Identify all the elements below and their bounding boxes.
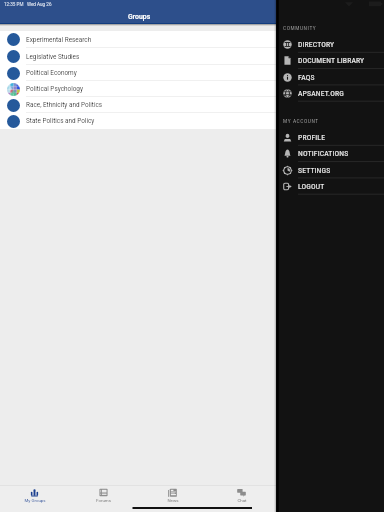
staticText: Political Economy	[26, 69, 77, 77]
staticText: SETTINGS	[298, 166, 331, 175]
staticText: 12:35 PM Wed Aug 26	[4, 2, 52, 7]
staticText: Groups	[128, 13, 151, 21]
staticText: Experimental Research	[26, 36, 92, 44]
staticText: Chat	[237, 498, 247, 503]
button[interactable]: SETTINGS	[276, 162, 384, 178]
staticText: PROFILE	[298, 133, 326, 142]
button[interactable]: Race, Ethnicity and Politics	[0, 97, 276, 113]
button[interactable]: My Groups	[0, 486, 69, 512]
staticText: LOGOUT	[298, 182, 325, 191]
button[interactable]: Experimental Research	[0, 31, 276, 48]
button[interactable]: Political Economy	[0, 65, 276, 81]
button[interactable]: State Politics and Policy	[0, 113, 276, 129]
staticText: DOCUMENT LIBRARY	[298, 56, 365, 65]
button[interactable]: NOTIFICATIONS	[276, 145, 384, 161]
staticText: Race, Ethnicity and Politics	[26, 101, 103, 109]
staticText: My Groups	[24, 498, 46, 503]
staticText: APSANET.ORG	[298, 89, 344, 98]
button[interactable]: DIRECTORY	[276, 36, 384, 52]
button[interactable]: Political Psychology	[0, 81, 276, 97]
button[interactable]: PROFILE	[276, 129, 384, 145]
staticText: Political Psychology	[26, 85, 83, 93]
button[interactable]: Legislative Studies	[0, 48, 276, 65]
staticText: FAQS	[298, 73, 315, 82]
staticText: State Politics and Policy	[26, 117, 95, 125]
staticText: Forums	[96, 498, 111, 503]
button[interactable]: FAQS	[276, 69, 384, 85]
staticText: News	[167, 498, 179, 503]
button[interactable]: APSANET.ORG	[276, 85, 384, 101]
button[interactable]: DOCUMENT LIBRARY	[276, 52, 384, 68]
staticText: Legislative Studies	[26, 53, 80, 61]
staticText: NOTIFICATIONS	[298, 149, 349, 158]
button[interactable]: Chat	[207, 486, 276, 512]
button[interactable]: LOGOUT	[276, 178, 384, 194]
staticText: DIRECTORY	[298, 40, 335, 49]
button[interactable]: Forums	[69, 486, 138, 512]
staticText: COMMUNITY	[283, 25, 317, 31]
button[interactable]: News	[138, 486, 207, 512]
staticText: MY ACCOUNT	[283, 118, 319, 124]
